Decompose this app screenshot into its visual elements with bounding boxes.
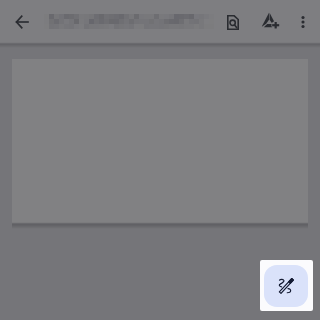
button[interactable]: More options	[285, 4, 320, 40]
button[interactable]: Find in document	[213, 2, 253, 42]
button[interactable]: Add to Drive	[250, 1, 290, 41]
button[interactable]: Help me write	[264, 265, 308, 307]
button[interactable]: Navigate up	[0, 0, 44, 43]
